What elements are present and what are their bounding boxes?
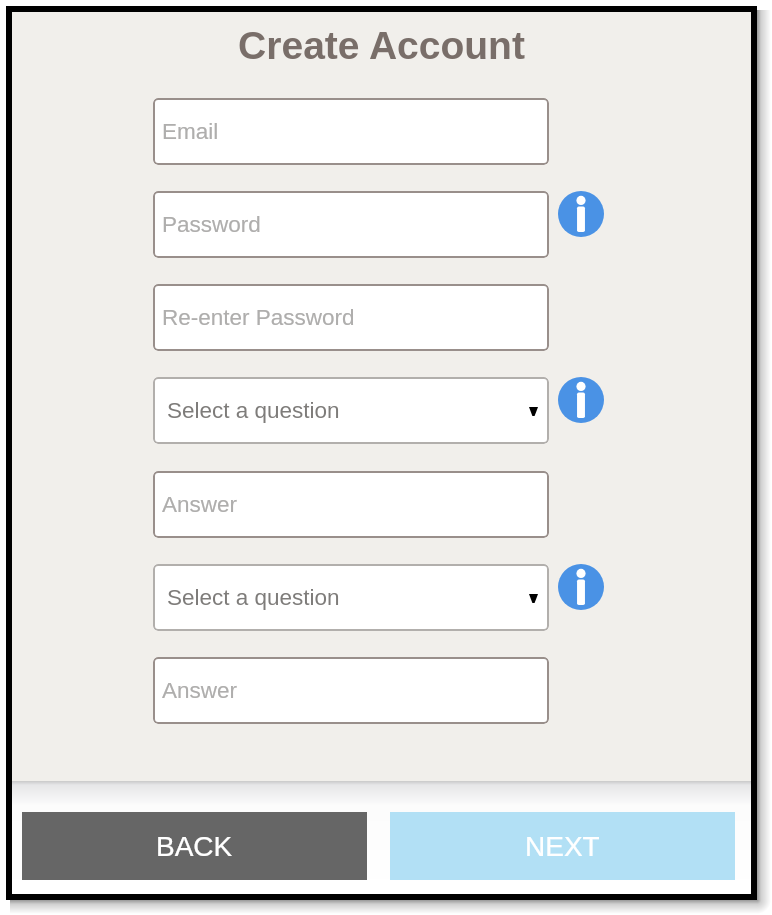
button[interactable]: Answer xyxy=(153,657,549,724)
button[interactable]: BACK xyxy=(22,812,367,880)
staticText: Select a question xyxy=(167,585,340,610)
button[interactable]: NEXT xyxy=(390,812,735,880)
button[interactable]: Select a question xyxy=(153,564,549,631)
staticText: NEXT xyxy=(525,831,600,862)
button[interactable]: Select a question xyxy=(153,377,549,444)
staticText: Select a question xyxy=(167,398,340,423)
button[interactable]: Email xyxy=(153,98,549,165)
button[interactable]: Password xyxy=(153,191,549,258)
staticText: Re-enter Password xyxy=(162,305,355,330)
button[interactable]: Re-enter Password xyxy=(153,284,549,351)
button[interactable]: More information xyxy=(558,191,604,237)
staticText: Create Account xyxy=(12,24,751,68)
staticText: Password xyxy=(162,212,261,237)
staticText: Answer xyxy=(162,678,238,703)
staticText: Answer xyxy=(162,492,238,517)
button[interactable]: More information xyxy=(558,564,604,610)
staticText: BACK xyxy=(156,831,233,862)
button[interactable]: More information xyxy=(558,377,604,423)
button[interactable]: Answer xyxy=(153,471,549,538)
staticText: Email xyxy=(162,119,219,144)
